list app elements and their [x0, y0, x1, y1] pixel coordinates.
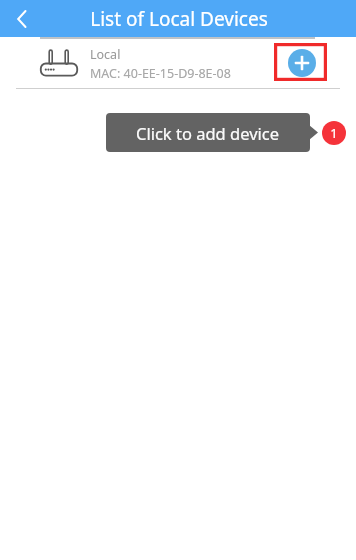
button[interactable]: Back: [0, 0, 44, 37]
button[interactable]: Add device: [288, 49, 316, 77]
staticText: Local: [90, 46, 121, 63]
staticText: 1: [330, 124, 338, 142]
button[interactable]: Click to add device: [106, 113, 310, 152]
staticText: Click to add device: [136, 122, 280, 144]
staticText: MAC: 40-EE-15-D9-8E-08: [90, 65, 231, 82]
button[interactable]: Local: [0, 40, 356, 88]
staticText: List of Local Devices: [90, 6, 268, 32]
